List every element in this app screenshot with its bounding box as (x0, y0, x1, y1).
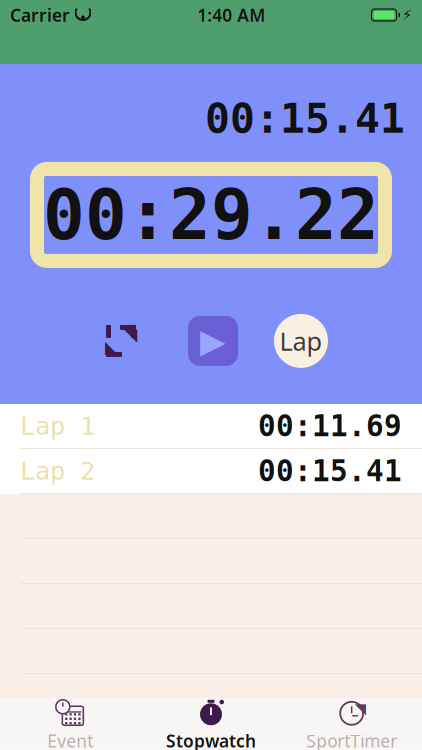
staticText: Lap (279, 324, 322, 358)
button[interactable]: Lap 2 (0, 449, 422, 494)
staticText: Event (47, 729, 93, 750)
staticText: ◣ (105, 337, 118, 357)
staticText: ⚡︎ (402, 7, 412, 23)
staticText: Stopwatch (166, 729, 256, 750)
button[interactable]: Stopwatch (141, 698, 281, 750)
staticText: 00:29.22 (43, 176, 379, 254)
button[interactable]: Lap (272, 312, 330, 370)
button[interactable]: Lap 1 (0, 404, 422, 449)
button[interactable]: Start (184, 312, 242, 370)
staticText: Carrier (10, 3, 70, 26)
staticText: 1:40 AM (197, 3, 265, 26)
staticText: 00:15.41 (258, 454, 402, 488)
button[interactable]: ◥ (281, 698, 422, 750)
staticText: SportTimer (306, 729, 397, 750)
staticText: 00:15.41 (205, 95, 405, 142)
button[interactable]: Reset (92, 312, 150, 370)
staticText: Lap 1 (20, 412, 95, 440)
staticText: ◥ (124, 325, 137, 345)
staticText: Lap 2 (20, 457, 95, 485)
staticText: ◥ (355, 700, 366, 717)
button[interactable]: Event (0, 698, 141, 750)
staticText: 00:11.69 (258, 409, 402, 443)
staticText: ▶ (200, 322, 226, 360)
